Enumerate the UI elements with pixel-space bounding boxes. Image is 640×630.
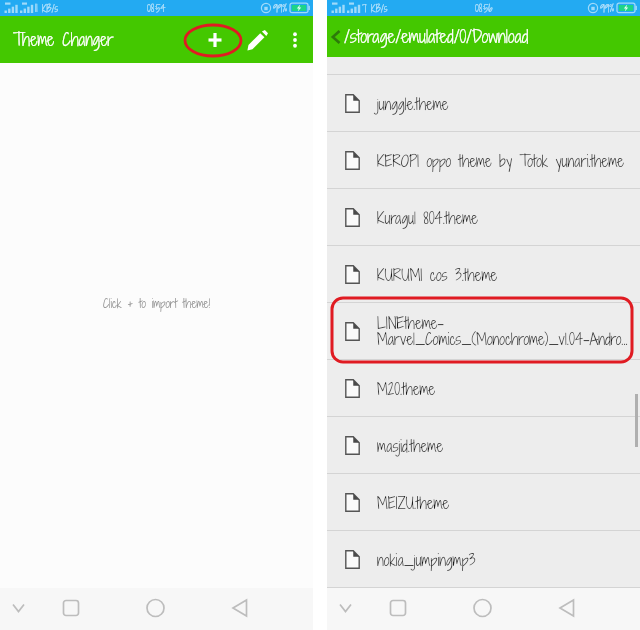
button[interactable]: M20.theme: [327, 360, 640, 416]
button[interactable]: junggle.theme: [327, 75, 640, 131]
staticText: /storage/emulated/0/Download: [344, 24, 529, 49]
button[interactable]: Recent apps: [44, 588, 101, 630]
button[interactable]: KEROPI oppo theme by Totok yunari.theme: [327, 132, 640, 188]
staticText: LINEtheme- Marvel_Comics_(Monochrome)_v1…: [377, 312, 630, 350]
button[interactable]: KURUMI cos 3.theme: [327, 246, 640, 302]
staticText: junggle.theme: [377, 93, 630, 114]
staticText: 99%: [273, 1, 287, 15]
staticText: Kuragul 804.theme: [377, 207, 630, 228]
staticText: M20.theme: [377, 378, 630, 399]
button[interactable]: Recent apps: [371, 588, 428, 630]
button[interactable]: Kuragul 804.theme: [327, 189, 640, 245]
button[interactable]: masjid.theme: [327, 417, 640, 473]
staticText: 11 KB/s: [35, 2, 59, 15]
button[interactable]: More options: [277, 22, 313, 58]
button[interactable]: Edit: [237, 20, 277, 60]
staticText: masjid.theme: [377, 435, 630, 456]
staticText: 7 KB/s: [362, 2, 388, 15]
button[interactable]: Back: [327, 16, 640, 57]
staticText: 08:54: [147, 1, 166, 15]
staticText: Click + to import theme!: [103, 295, 211, 312]
button[interactable]: Back: [185, 588, 269, 630]
staticText: Theme Changer: [13, 28, 114, 51]
button[interactable]: Hide keyboard: [327, 588, 371, 630]
staticText: KURUMI cos 3.theme: [377, 264, 630, 285]
button[interactable]: MEIZU.theme: [327, 474, 640, 530]
button[interactable]: Back: [512, 588, 596, 630]
staticText: 99%: [600, 1, 614, 15]
staticText: MEIZU.theme: [377, 492, 630, 513]
button[interactable]: Home: [428, 588, 512, 630]
button[interactable]: Add theme: [193, 18, 237, 62]
button[interactable]: nokia_jumpingmp3: [327, 531, 640, 587]
button[interactable]: LINEtheme- Marvel_Comics_(Monochrome)_v1…: [327, 303, 640, 359]
other: Back: [327, 28, 345, 46]
button[interactable]: Home: [101, 588, 185, 630]
staticText: nokia_jumpingmp3: [377, 549, 630, 570]
staticText: 08:56: [475, 1, 493, 15]
staticText: KEROPI oppo theme by Totok yunari.theme: [377, 150, 630, 171]
button[interactable]: Hide keyboard: [0, 588, 44, 630]
